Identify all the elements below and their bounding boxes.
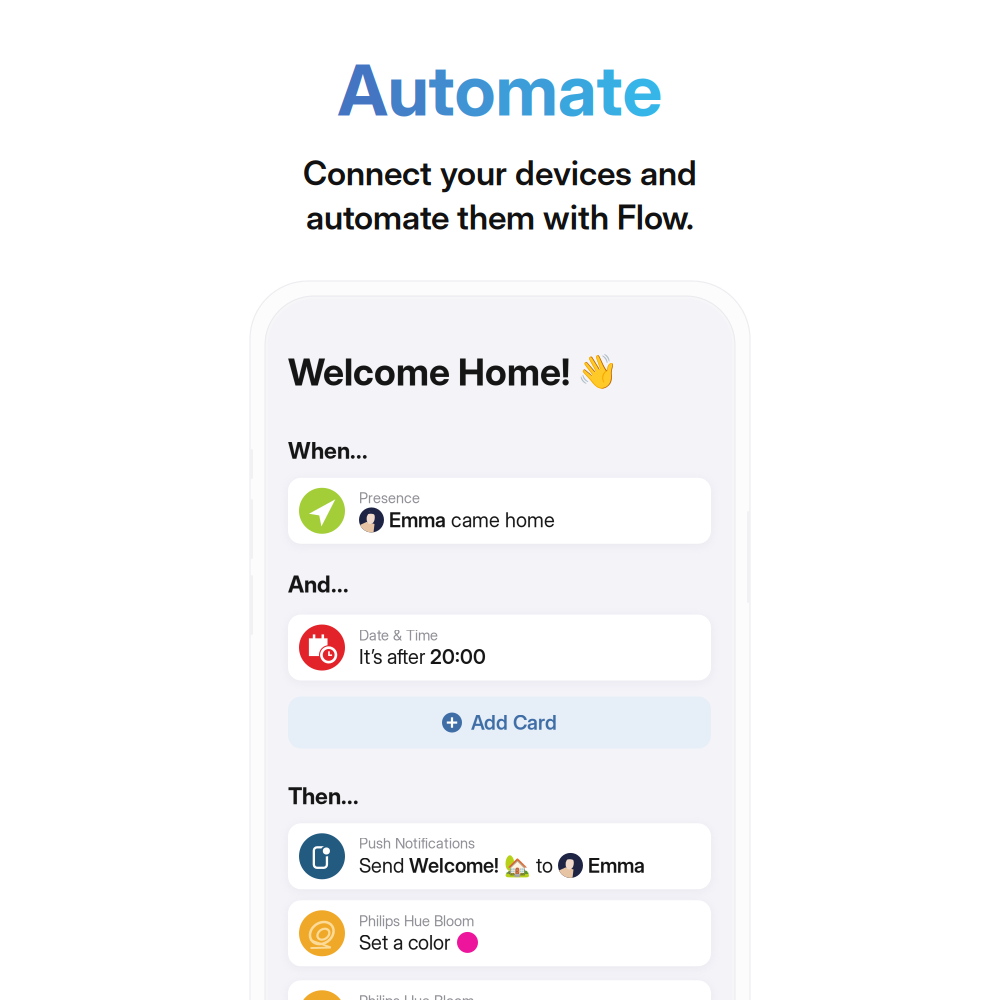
- staticText: Add Card: [471, 711, 557, 734]
- staticText: e: [622, 48, 662, 131]
- staticText: 🏡: [504, 853, 531, 878]
- staticText: u: [387, 48, 428, 131]
- staticText: t: [596, 48, 622, 131]
- staticText: A: [337, 48, 387, 131]
- staticText: Welcome Home!: [288, 350, 570, 394]
- staticText: 👋: [577, 353, 619, 391]
- staticText: Send: [359, 854, 404, 877]
- button[interactable]: Push Notifications: [288, 823, 711, 889]
- staticText: came home: [451, 508, 555, 532]
- staticText: Push Notifications: [359, 835, 475, 852]
- button[interactable]: Date & Time: [288, 614, 711, 680]
- staticText: It’s after: [359, 645, 425, 668]
- staticText: When...: [288, 437, 368, 464]
- staticText: automate them with Flow.: [306, 198, 694, 237]
- staticText: Welcome!: [409, 854, 499, 877]
- button[interactable]: Presence: [288, 478, 711, 544]
- staticText: Date & Time: [359, 627, 438, 644]
- button[interactable]: Philips Hue Bloom: [288, 900, 711, 966]
- button[interactable]: Philips Hue Bloom: [288, 980, 711, 1000]
- staticText: 20:00: [430, 645, 486, 668]
- staticText: a: [557, 48, 596, 131]
- staticText: o: [454, 48, 495, 131]
- staticText: Emma: [389, 508, 446, 532]
- staticText: Then...: [288, 782, 359, 809]
- staticText: m: [495, 48, 557, 131]
- staticText: to: [536, 854, 553, 877]
- staticText: Philips Hue Bloom: [359, 992, 474, 1000]
- staticText: t: [428, 48, 454, 131]
- staticText: Set a color: [359, 931, 450, 954]
- staticText: Presence: [359, 489, 420, 506]
- staticText: Connect your devices and: [303, 153, 697, 193]
- staticText: Philips Hue Bloom: [359, 912, 474, 930]
- button[interactable]: Add Card: [288, 696, 711, 748]
- staticText: Emma: [588, 854, 645, 877]
- staticText: And...: [288, 571, 349, 597]
